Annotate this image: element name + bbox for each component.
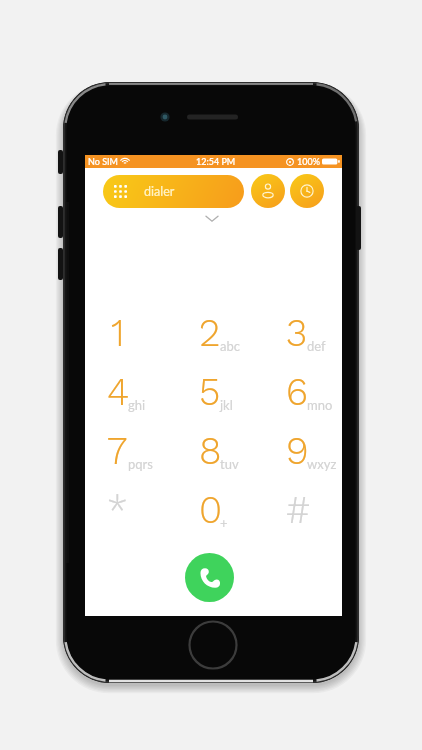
button[interactable]: 9 bbox=[286, 428, 359, 474]
staticText: pqrs bbox=[128, 456, 153, 472]
staticText: 1 bbox=[111, 311, 125, 356]
staticText: 6 bbox=[286, 370, 307, 415]
button[interactable]: dialer bbox=[103, 175, 244, 208]
button[interactable]: # bbox=[286, 487, 359, 533]
button[interactable]: 3 bbox=[286, 310, 359, 356]
button[interactable]: 6 bbox=[286, 369, 359, 415]
button[interactable]: 7 bbox=[107, 428, 181, 474]
staticText: 9 bbox=[286, 429, 307, 474]
staticText: 7 bbox=[107, 429, 128, 474]
staticText: tuv bbox=[220, 456, 239, 472]
staticText: dialer bbox=[144, 184, 175, 199]
button[interactable]: 1 bbox=[107, 310, 181, 356]
staticText: jkl bbox=[220, 397, 233, 413]
staticText: No SIM bbox=[88, 156, 118, 167]
button[interactable]: 4 bbox=[107, 369, 181, 415]
button[interactable]: 0 bbox=[199, 487, 273, 533]
staticText: wxyz bbox=[307, 456, 337, 472]
staticText: 12:54 PM bbox=[196, 156, 236, 167]
staticText: 2 bbox=[199, 311, 220, 356]
staticText: 3 bbox=[286, 311, 307, 356]
button[interactable]: 5 bbox=[199, 369, 273, 415]
staticText: * bbox=[107, 488, 128, 533]
staticText: ghi bbox=[128, 397, 146, 413]
staticText: 100% bbox=[297, 156, 320, 167]
staticText: 8 bbox=[199, 429, 220, 474]
button[interactable]: 8 bbox=[199, 428, 273, 474]
staticText: # bbox=[286, 488, 307, 533]
staticText: abc bbox=[220, 338, 240, 354]
staticText: 5 bbox=[199, 370, 220, 415]
button[interactable]: * bbox=[107, 487, 181, 533]
staticText: def bbox=[307, 338, 326, 354]
staticText: mno bbox=[307, 397, 333, 413]
button[interactable]: 2 bbox=[199, 310, 273, 356]
button[interactable]: Contacts bbox=[251, 174, 285, 208]
button[interactable]: Call bbox=[185, 553, 234, 602]
staticText: 4 bbox=[107, 370, 128, 415]
staticText: 0 bbox=[199, 488, 220, 533]
button[interactable]: Recents bbox=[290, 174, 324, 208]
staticText: + bbox=[220, 515, 228, 531]
